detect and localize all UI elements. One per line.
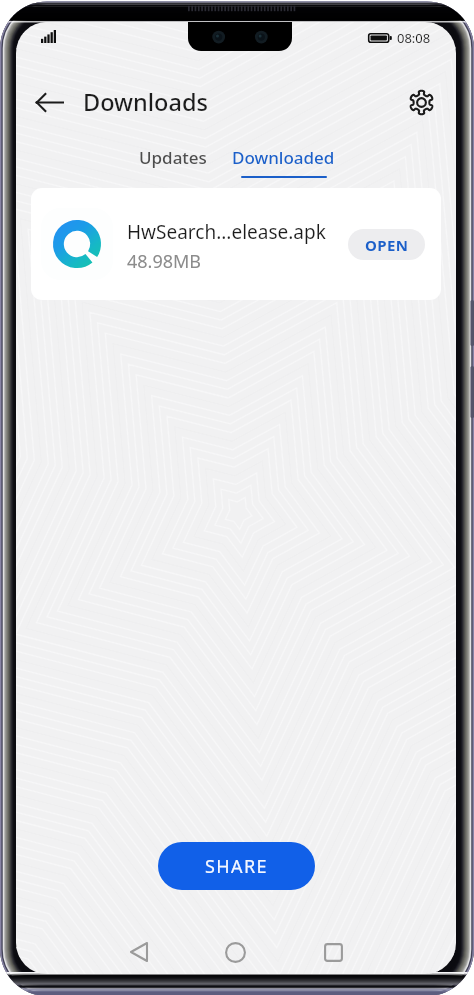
- button[interactable]: HwSearch...elease.apk: [31, 188, 441, 300]
- button[interactable]: Recents: [311, 930, 355, 974]
- button[interactable]: Back: [117, 930, 161, 974]
- staticText: Downloads: [83, 86, 208, 118]
- button[interactable]: SHARE: [158, 842, 315, 890]
- button[interactable]: Settings: [398, 79, 444, 125]
- button[interactable]: Home: [213, 930, 257, 974]
- button[interactable]: Back: [26, 79, 72, 125]
- staticText: SHARE: [205, 854, 268, 879]
- staticText: HwSearch...elease.apk: [127, 219, 326, 245]
- button[interactable]: OPEN: [348, 229, 425, 260]
- button[interactable]: Downloaded: [228, 144, 339, 180]
- staticText: Downloaded: [232, 146, 335, 169]
- staticText: Updates: [139, 146, 207, 169]
- staticText: OPEN: [365, 235, 409, 255]
- button[interactable]: Updates: [123, 144, 223, 171]
- staticText: 08:08: [397, 29, 431, 47]
- staticText: 48.98MB: [127, 249, 202, 274]
